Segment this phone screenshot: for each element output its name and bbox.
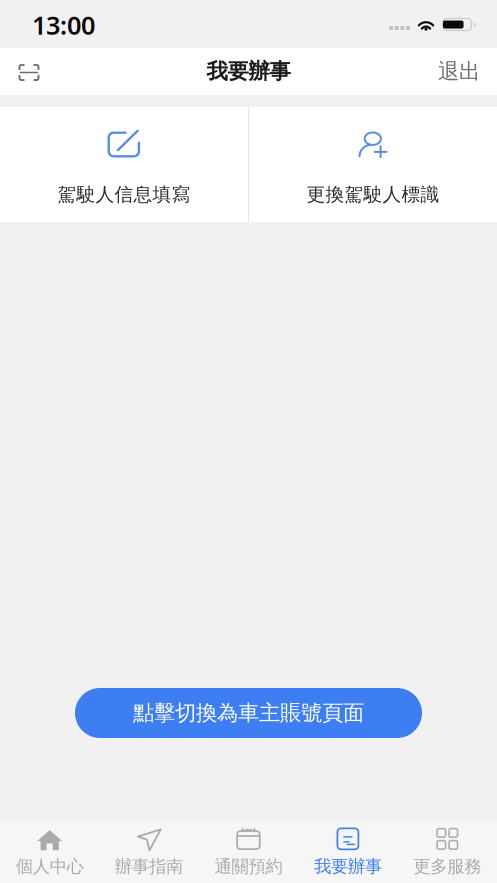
staticText: 更多服務 — [413, 856, 481, 877]
button[interactable]: 更多服務 — [398, 822, 497, 883]
button[interactable]: 點擊切換為車主賬號頁面 — [75, 688, 422, 738]
button[interactable]: Scan — [5, 47, 52, 96]
button[interactable]: 辦事指南 — [99, 822, 199, 883]
button[interactable]: 我要辦事 — [298, 822, 398, 883]
staticText: 我要辦事 — [314, 856, 382, 877]
staticText: 退出 — [438, 58, 480, 85]
button[interactable]: 駕駛人信息填寫 — [0, 107, 248, 222]
button[interactable]: 通關預約 — [199, 822, 298, 883]
button[interactable]: 更換駕駛人標識 — [249, 107, 497, 222]
staticText: 更換駕駛人標識 — [306, 183, 439, 206]
staticText: 駕駛人信息填寫 — [57, 183, 190, 206]
staticText: 13:00 — [32, 8, 95, 42]
staticText: 點擊切換為車主賬號頁面 — [133, 700, 364, 726]
staticText: 我要辦事 — [206, 58, 290, 85]
button[interactable]: 退出 — [426, 48, 492, 95]
button[interactable]: 個人中心 — [0, 822, 99, 883]
staticText: 通關預約 — [214, 856, 282, 877]
staticText: 個人中心 — [16, 856, 84, 877]
staticText: 辦事指南 — [115, 856, 183, 877]
